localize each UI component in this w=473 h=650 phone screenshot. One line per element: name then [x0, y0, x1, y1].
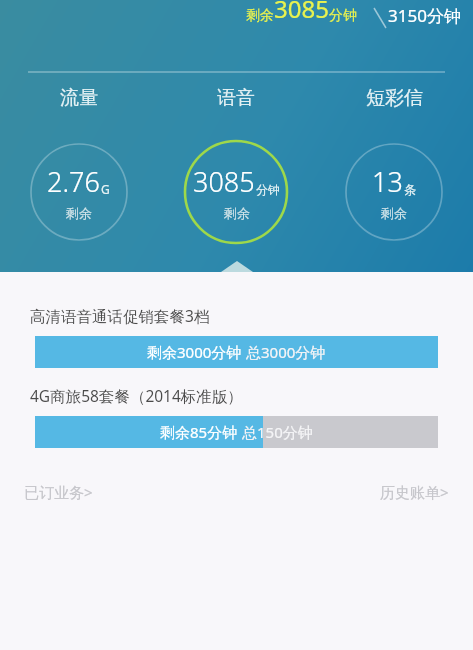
staticText: 4G商旅58套餐（2014标准版）	[30, 385, 243, 406]
button[interactable]: 已订业务>	[20, 476, 97, 508]
staticText: 总150分钟	[242, 422, 313, 442]
staticText: 3085	[274, 0, 329, 25]
staticText: 条	[404, 182, 416, 197]
staticText: 流量	[60, 86, 98, 110]
staticText: G	[101, 181, 110, 197]
button[interactable]: 3085	[157, 133, 315, 251]
staticText: 3085	[193, 163, 255, 200]
staticText: 分钟	[329, 7, 357, 25]
staticText: 剩余	[246, 7, 274, 25]
staticText: 剩余85分钟	[160, 422, 242, 442]
button[interactable]: 4G商旅58套餐（2014标准版）	[0, 385, 473, 448]
staticText: 剩余	[381, 205, 407, 221]
staticText: 剩余	[224, 205, 250, 221]
staticText: 短彩信	[366, 86, 423, 110]
staticText: 2.76	[47, 163, 100, 200]
staticText: 已订业务>	[24, 482, 93, 502]
button[interactable]: 13	[315, 133, 473, 251]
staticText: 剩余	[66, 205, 92, 221]
button[interactable]: 2.76	[0, 133, 157, 251]
staticText: 分钟	[256, 182, 280, 197]
staticText: 高清语音通话促销套餐3档	[30, 305, 210, 326]
staticText: 语音	[217, 86, 255, 110]
button[interactable]: 历史账单>	[376, 476, 453, 508]
button[interactable]: 高清语音通话促销套餐3档	[0, 305, 473, 368]
staticText: 历史账单>	[380, 482, 449, 502]
staticText: 剩余3000分钟	[147, 342, 246, 362]
staticText: 总3000分钟	[246, 342, 326, 362]
other: Collapse	[221, 261, 253, 272]
staticText: 13	[372, 163, 403, 200]
staticText: 3150分钟	[388, 4, 461, 27]
